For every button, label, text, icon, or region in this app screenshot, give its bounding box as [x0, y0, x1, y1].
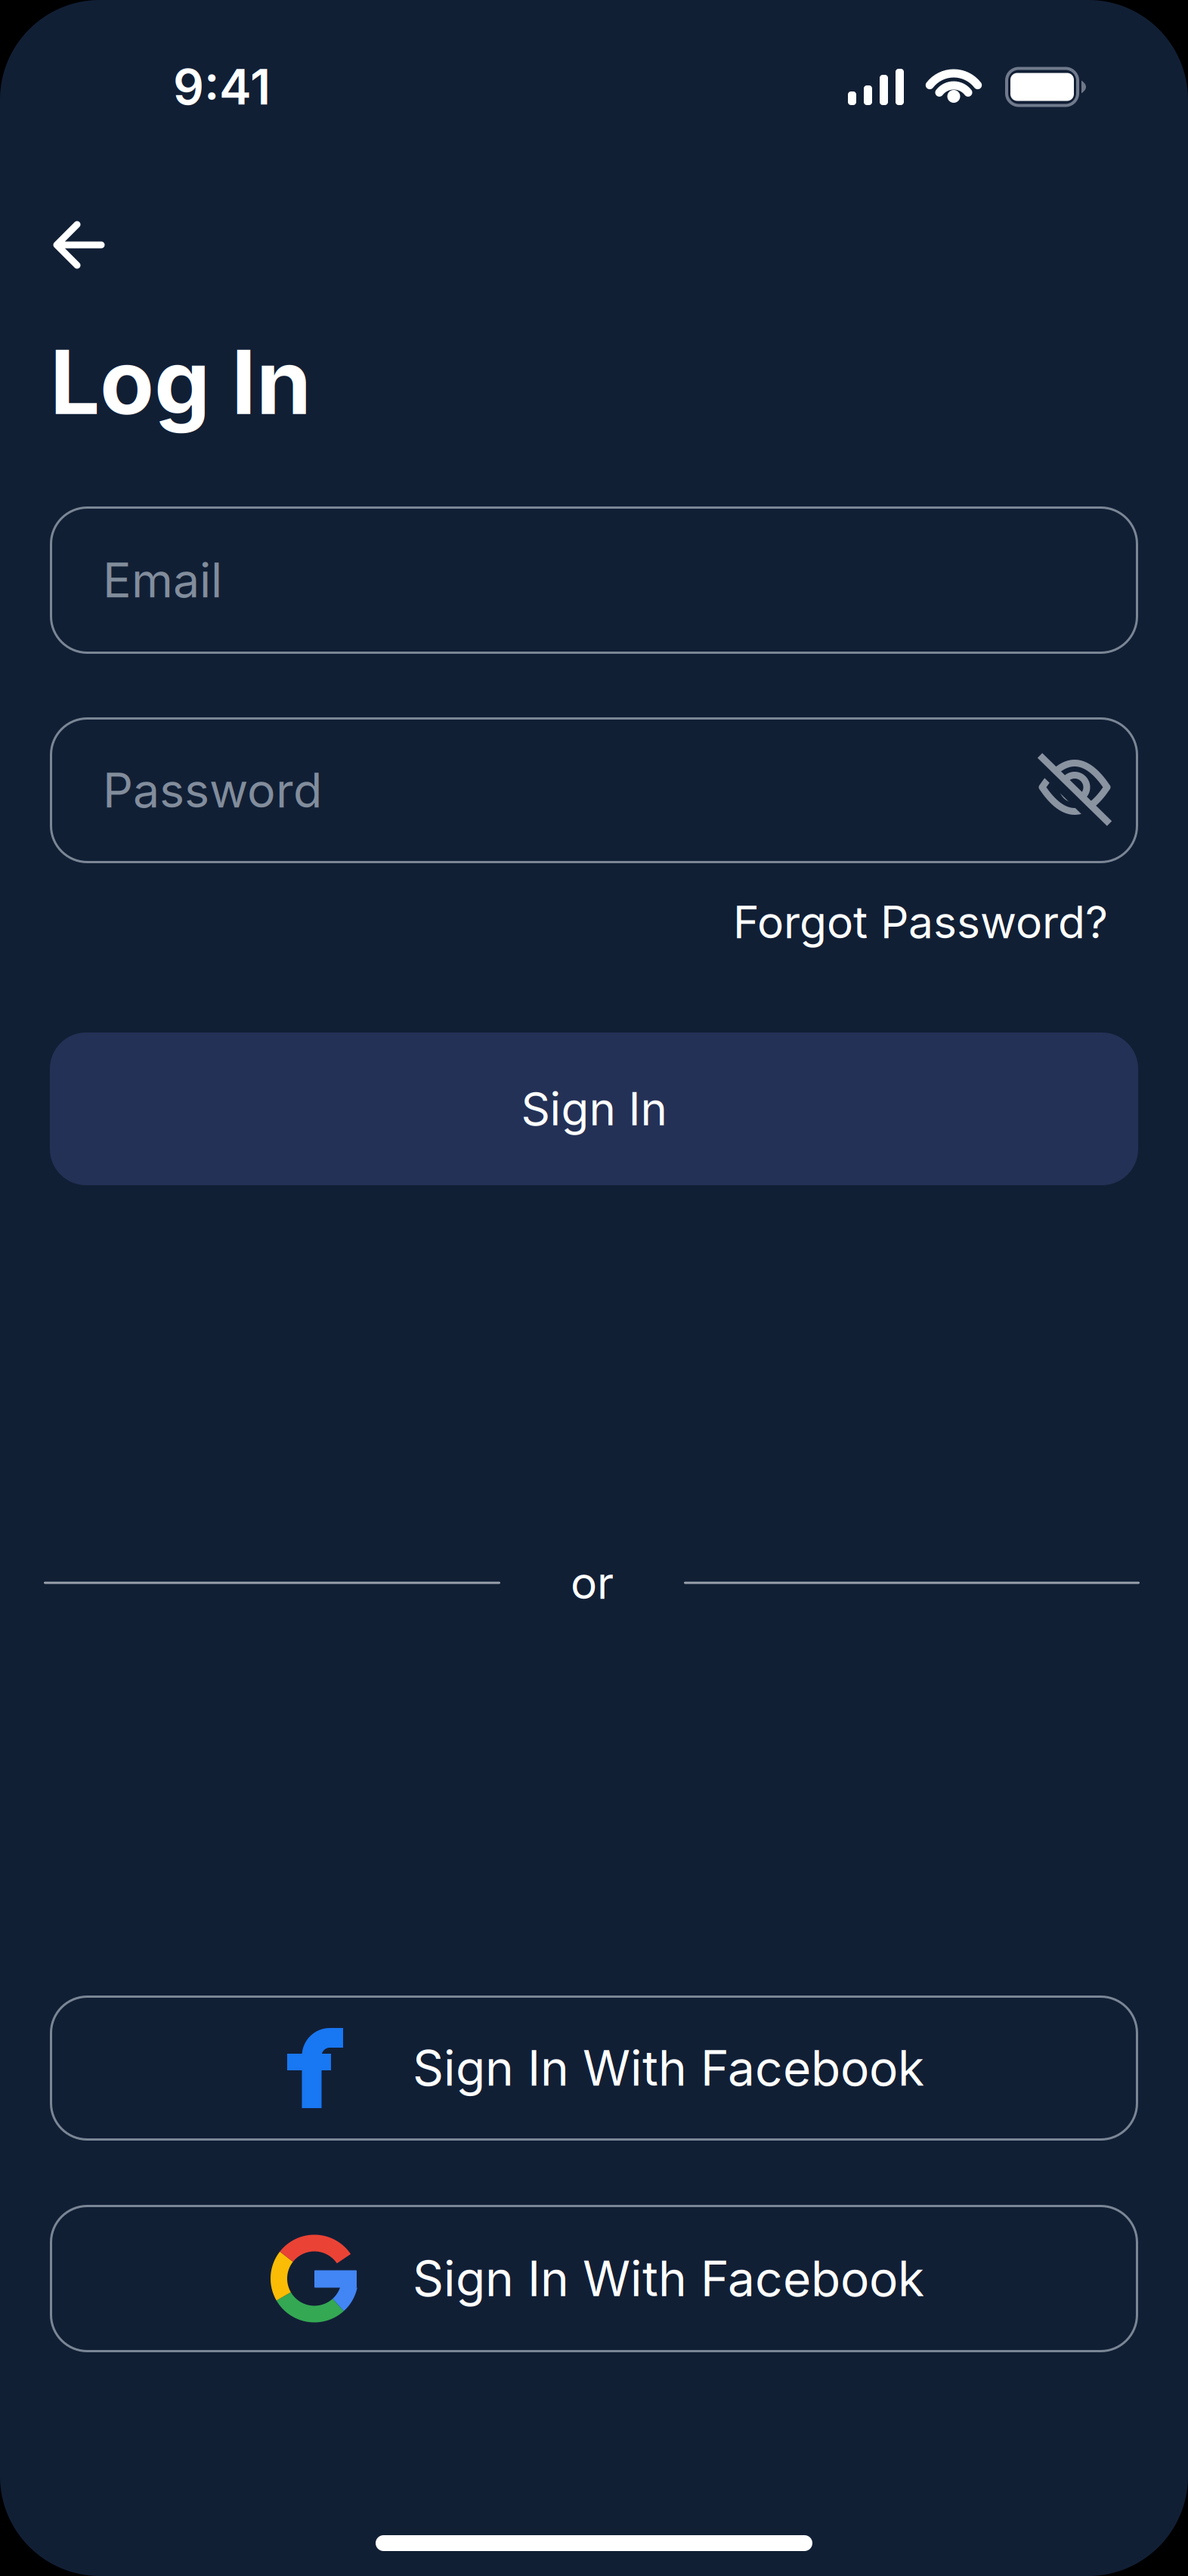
staticText: Forgot Password? — [733, 896, 1108, 948]
button[interactable] — [55, 223, 104, 267]
staticText: Sign In With Facebook — [413, 2250, 924, 2307]
button[interactable]: Sign In With Facebook — [50, 2205, 1138, 2352]
button[interactable]: Sign In — [50, 1033, 1138, 1185]
button[interactable]: Forgot Password? — [733, 894, 1108, 950]
staticText: Email — [103, 552, 222, 608]
staticText: Sign In — [521, 1082, 667, 1136]
staticText: Sign In With Facebook — [413, 2039, 924, 2097]
button[interactable]: Sign In With Facebook — [50, 1995, 1138, 2141]
button[interactable]: Password — [50, 717, 1138, 863]
staticText: 9:41 — [173, 58, 271, 115]
staticText: or — [571, 1557, 614, 1609]
button[interactable]: Email — [50, 506, 1138, 654]
staticText: Log In — [50, 329, 311, 434]
staticText: Password — [103, 762, 322, 818]
